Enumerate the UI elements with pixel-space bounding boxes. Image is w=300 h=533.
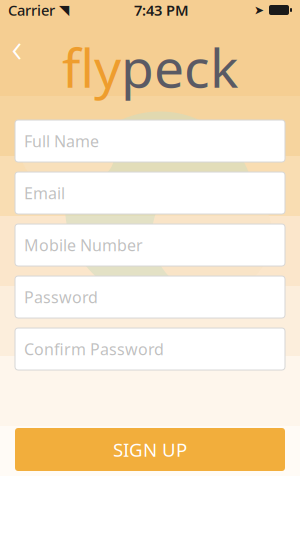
- button[interactable]: Full Name: [15, 120, 285, 162]
- staticText: 7:43 PM: [134, 0, 189, 20]
- staticText: ◥: [59, 2, 69, 17]
- button[interactable]: Confirm Password: [15, 328, 285, 370]
- button[interactable]: Mobile Number: [15, 224, 285, 266]
- staticText: ‹: [11, 20, 22, 73]
- button[interactable]: Back: [0, 27, 34, 67]
- staticText: SIGN UP: [113, 437, 187, 462]
- staticText: Confirm Password: [24, 338, 164, 360]
- staticText: Email: [24, 182, 65, 204]
- button[interactable]: Email: [15, 172, 285, 214]
- button[interactable]: SIGN UP: [15, 428, 285, 471]
- button[interactable]: Password: [15, 276, 285, 318]
- staticText: ➤: [254, 3, 264, 17]
- staticText: Password: [24, 286, 98, 308]
- staticText: Carrier: [8, 0, 55, 20]
- staticText: fly: [62, 32, 121, 102]
- staticText: Mobile Number: [24, 234, 143, 256]
- staticText: Full Name: [24, 130, 99, 152]
- staticText: peck: [121, 32, 238, 102]
